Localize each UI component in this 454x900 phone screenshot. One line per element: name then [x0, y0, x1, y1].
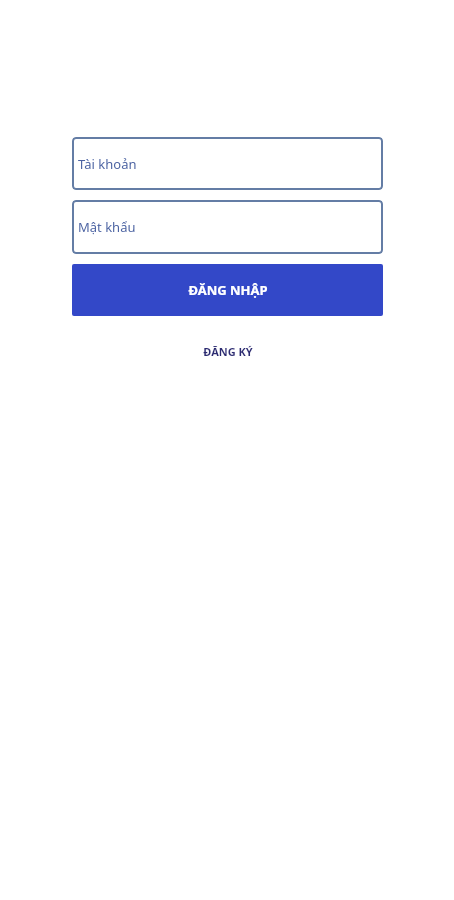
button[interactable]: Mật khẩu [72, 200, 383, 254]
button[interactable]: Tài khoản [72, 137, 383, 190]
button[interactable]: ĐĂNG KÝ [193, 334, 263, 369]
staticText: Mật khẩu [78, 218, 136, 236]
staticText: ĐĂNG NHẬP [188, 281, 268, 299]
button[interactable]: ĐĂNG NHẬP [72, 264, 383, 316]
staticText: ĐĂNG KÝ [203, 344, 253, 359]
staticText: Tài khoản [78, 155, 137, 173]
